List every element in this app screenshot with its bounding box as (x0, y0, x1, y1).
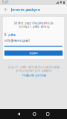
staticText: info@imones-pav.lt (4, 39, 30, 42)
button[interactable]: Privatumo politika (21, 74, 45, 77)
staticText: Jūsų el. pašto adresas bus naudojamas pr… (8, 65, 59, 73)
button[interactable]: Recent apps (42, 109, 53, 119)
button[interactable]: Back (1, 5, 10, 14)
button[interactable]: TOLIAU (4, 50, 63, 56)
staticText: Įveskite pageidaujamą arba jau turimą el… (13, 21, 53, 29)
button[interactable]: Back (13, 109, 24, 119)
button[interactable]: Home (29, 109, 40, 119)
staticText: Įmonės paskyra (10, 7, 39, 12)
staticText: TOLIAU (29, 51, 38, 55)
staticText: Privatumo politika (21, 74, 45, 77)
staticText: 9:41 (2, 1, 9, 4)
staticText: El. paštas (4, 33, 15, 37)
